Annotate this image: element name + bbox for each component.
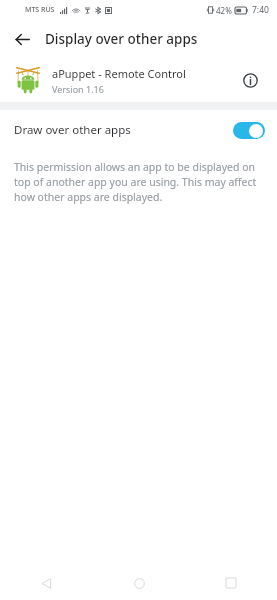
staticText: This permission allows an app to be disp… bbox=[14, 160, 259, 204]
staticText: Display over other apps bbox=[45, 30, 198, 48]
button[interactable]: Back bbox=[8, 25, 36, 53]
button[interactable]: Draw over other apps bbox=[0, 110, 277, 150]
button[interactable]: Recents bbox=[185, 566, 277, 600]
staticText: Draw over other apps bbox=[14, 122, 233, 138]
staticText: Version 1.16 bbox=[52, 83, 104, 95]
staticText: 7:40 bbox=[252, 4, 269, 16]
button[interactable]: App info bbox=[237, 67, 263, 93]
button[interactable]: Back bbox=[0, 566, 93, 600]
button[interactable]: Draw over other apps toggle bbox=[233, 122, 265, 139]
staticText: 42% bbox=[216, 5, 232, 16]
button[interactable]: aPuppet - Remote Control bbox=[0, 58, 277, 102]
staticText: MTS RUS bbox=[25, 5, 55, 15]
staticText: aPuppet - Remote Control bbox=[52, 66, 186, 81]
